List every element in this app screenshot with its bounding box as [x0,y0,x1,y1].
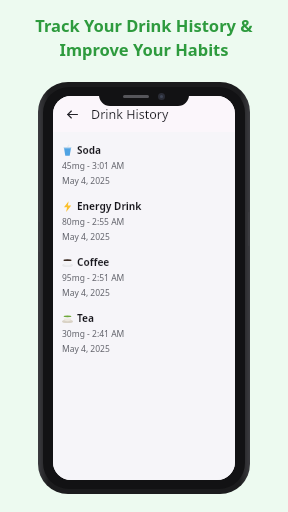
button[interactable]: Back [59,101,85,127]
button[interactable]: Tea [53,308,235,364]
staticText: May 4, 2025 [62,231,110,243]
staticText: 95mg - 2:51 AM [62,272,125,284]
staticText: 30mg - 2:41 AM [62,328,125,340]
staticText: Tea [77,311,95,325]
staticText: May 4, 2025 [62,175,110,187]
button[interactable]: Back [53,96,235,132]
button[interactable]: Coffee [53,252,235,308]
staticText: Coffee [77,255,110,269]
staticText: Drink History [91,106,169,123]
staticText: Improve Your Habits [59,38,229,60]
staticText: Energy Drink [77,199,142,213]
button[interactable]: Energy Drink [53,196,235,252]
button[interactable]: Soda [53,140,235,196]
staticText: Soda [77,143,102,157]
staticText: May 4, 2025 [62,343,110,355]
staticText: 80mg - 2:55 AM [62,216,125,228]
staticText: 45mg - 3:01 AM [62,160,125,172]
staticText: Track Your Drink History & [35,14,253,36]
staticText: May 4, 2025 [62,287,110,299]
